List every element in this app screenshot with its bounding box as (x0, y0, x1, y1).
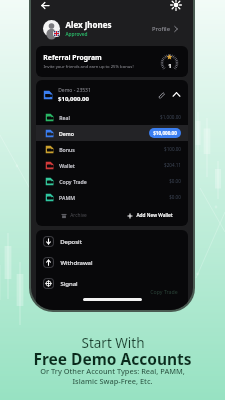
button[interactable]: Back (40, 0, 51, 11)
staticText: Signal (60, 280, 78, 288)
button[interactable]: Demo (36, 125, 188, 141)
button[interactable]: Deposit (36, 231, 188, 252)
staticText: Alex Jhones (65, 19, 112, 30)
staticText: Demo (59, 130, 74, 137)
staticText: Archive (70, 212, 87, 219)
staticText: Free Demo Accounts (33, 348, 192, 369)
staticText: Demo - 23531 (58, 87, 91, 94)
staticText: $204.11 (164, 162, 181, 168)
button[interactable]: PAMM (36, 189, 188, 205)
staticText: Add New Wallet (136, 212, 173, 219)
staticText: Invite your friends and earn up to 25% b… (43, 64, 134, 70)
button[interactable]: Real (36, 109, 188, 125)
staticText: 1 (168, 62, 172, 70)
button[interactable]: Alex Jhones (31, 11, 193, 46)
button[interactable]: Theme (170, 0, 182, 11)
staticText: Profile (152, 25, 170, 33)
staticText: Real (59, 114, 70, 121)
button[interactable]: Wallet (36, 157, 188, 173)
staticText: Referral Program (43, 53, 102, 62)
button[interactable]: Archive (36, 205, 112, 226)
staticText: $100.00 (164, 146, 181, 152)
staticText: $10,000.00 (58, 95, 89, 103)
button[interactable]: Collapse (172, 90, 181, 99)
staticText: $0.00 (169, 194, 181, 200)
staticText: Bonus (59, 146, 75, 153)
staticText: Copy Trade (59, 178, 87, 185)
staticText: PAMM (59, 194, 75, 201)
button[interactable]: Edit (157, 90, 166, 99)
staticText: Islamic Swap-Free, Etc. (72, 376, 153, 386)
button[interactable]: Bonus (36, 141, 188, 157)
button[interactable]: Demo - 23531 (36, 80, 188, 109)
staticText: $1,000.00 (160, 114, 181, 120)
button[interactable]: Referral Program (36, 46, 188, 77)
staticText: Deposit (60, 238, 82, 246)
button[interactable]: Add New Wallet (112, 205, 188, 226)
button[interactable]: Signal (36, 273, 188, 294)
staticText: $0.00 (169, 178, 181, 184)
staticText: $10,000.00 (153, 130, 177, 136)
staticText: Approved (65, 31, 88, 38)
staticText: Withdrawal (60, 259, 93, 267)
button[interactable]: Withdrawal (36, 252, 188, 273)
button[interactable]: Copy Trade (36, 173, 188, 189)
staticText: Wallet (59, 162, 75, 169)
staticText: Or Try Other Account Types: Real, PAMM, (40, 366, 185, 376)
staticText: Copy Trade (150, 288, 178, 295)
staticText: Start With (81, 334, 145, 352)
